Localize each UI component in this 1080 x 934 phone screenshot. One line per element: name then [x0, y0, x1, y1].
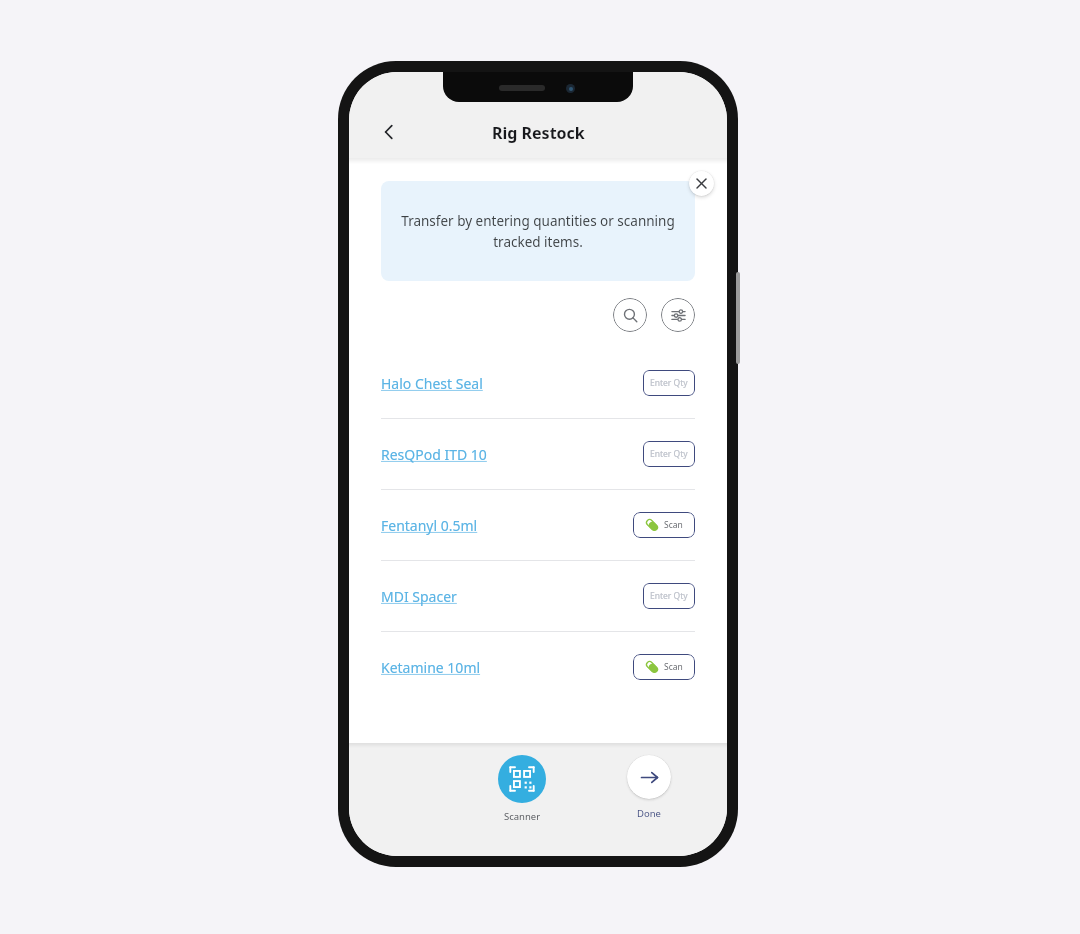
staticText: Rig Restock: [492, 122, 585, 144]
button[interactable]: Halo Chest Seal: [381, 374, 643, 393]
button[interactable]: Back: [369, 112, 409, 152]
button[interactable]: Enter Qty: [643, 583, 695, 609]
staticText: Enter Qty: [650, 377, 688, 389]
staticText: Halo Chest Seal: [381, 374, 483, 393]
button[interactable]: Search: [613, 298, 647, 332]
button[interactable]: Ketamine 10ml: [381, 658, 633, 677]
staticText: ResQPod ITD 10: [381, 445, 487, 464]
button[interactable]: Filter: [661, 298, 695, 332]
staticText: Enter Qty: [650, 590, 688, 602]
staticText: MDI Spacer: [381, 587, 457, 606]
staticText: Done: [637, 807, 661, 820]
staticText: Scanner: [504, 810, 541, 823]
staticText: Fentanyl 0.5ml: [381, 516, 478, 535]
staticText: Scan: [664, 661, 683, 673]
button[interactable]: Enter Qty: [643, 370, 695, 396]
button[interactable]: Close: [689, 171, 714, 196]
button[interactable]: Done: [627, 755, 671, 820]
staticText: Ketamine 10ml: [381, 658, 481, 677]
button[interactable]: Fentanyl 0.5ml: [381, 516, 633, 535]
button[interactable]: Scan: [633, 512, 695, 538]
staticText: Enter Qty: [650, 448, 688, 460]
staticText: Scan: [664, 519, 683, 531]
button[interactable]: Scan: [633, 654, 695, 680]
button[interactable]: ResQPod ITD 10: [381, 445, 643, 464]
button[interactable]: Enter Qty: [643, 441, 695, 467]
button[interactable]: Scanner: [498, 755, 546, 823]
button[interactable]: MDI Spacer: [381, 587, 643, 606]
staticText: Transfer by entering quantities or scann…: [399, 212, 677, 251]
